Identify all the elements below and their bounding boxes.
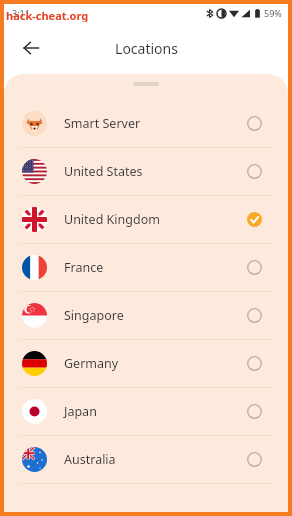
button[interactable]: Japan: [4, 388, 288, 435]
staticText: Locations: [115, 39, 178, 58]
staticText: 3:11: [12, 7, 30, 19]
button[interactable]: Back: [14, 31, 48, 65]
button[interactable]: France: [4, 244, 288, 291]
staticText: 59%: [264, 7, 282, 19]
button[interactable]: United States: [4, 148, 288, 195]
button[interactable]: United Kingdom: [4, 196, 288, 243]
staticText: United States: [64, 163, 247, 180]
button[interactable]: Australia: [4, 436, 288, 483]
staticText: France: [64, 259, 247, 276]
button[interactable]: Singapore: [4, 292, 288, 339]
staticText: Singapore: [64, 307, 247, 324]
staticText: Australia: [64, 451, 247, 468]
staticText: Japan: [64, 403, 247, 420]
button[interactable]: Smart Server: [4, 100, 288, 147]
staticText: Smart Server: [64, 115, 247, 132]
staticText: United Kingdom: [64, 211, 247, 228]
button[interactable]: Germany: [4, 340, 288, 387]
staticText: Germany: [64, 355, 247, 372]
staticText: hack-cheat.org: [6, 8, 89, 22]
